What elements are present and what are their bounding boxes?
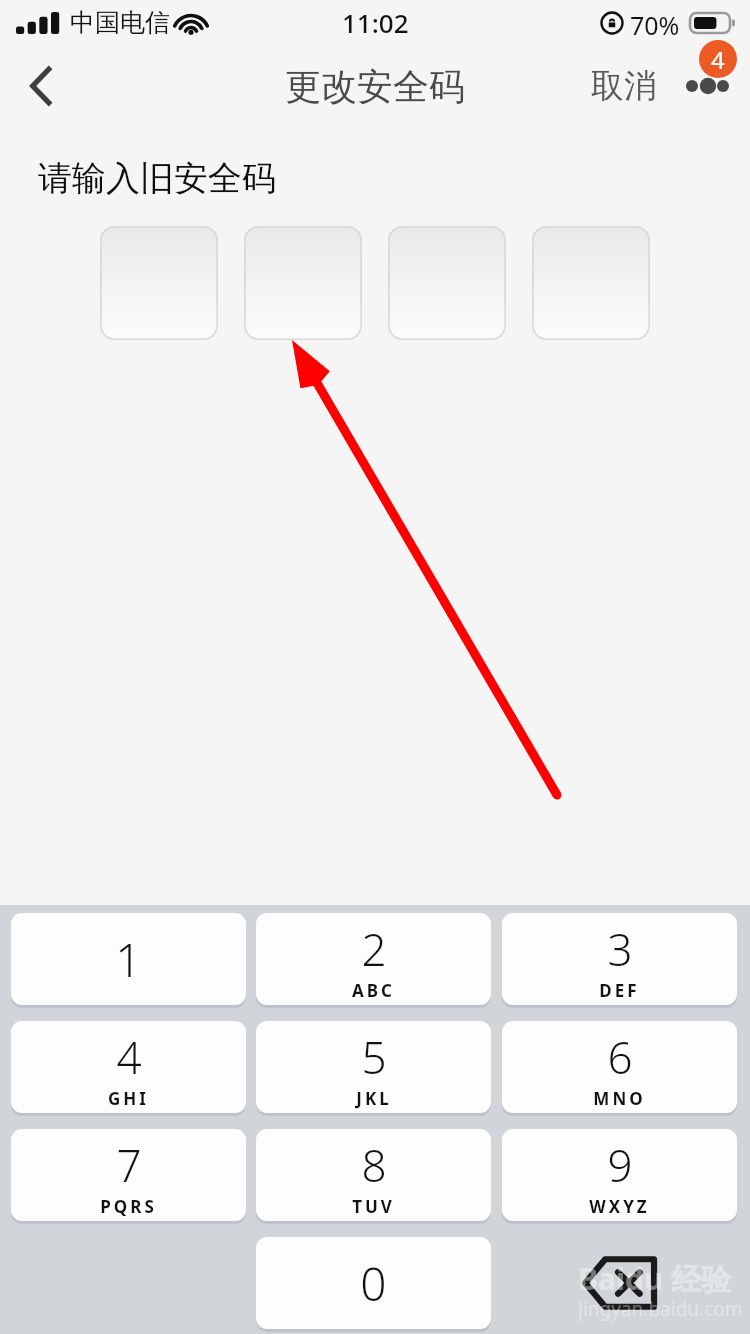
- staticText: 9: [607, 1135, 633, 1195]
- button[interactable]: Back: [8, 44, 74, 128]
- staticText: 2: [361, 919, 387, 979]
- button[interactable]: [532, 226, 650, 340]
- staticText: MNO: [593, 1087, 646, 1110]
- staticText: 4: [116, 1027, 142, 1087]
- staticText: GHI: [108, 1087, 149, 1110]
- staticText: 70%: [630, 8, 680, 42]
- button[interactable]: 4: [11, 1021, 246, 1113]
- button[interactable]: 6: [502, 1021, 737, 1113]
- button[interactable]: More options: [672, 44, 750, 128]
- button[interactable]: [388, 226, 506, 340]
- staticText: 0: [360, 1252, 387, 1315]
- staticText: 取消: [591, 65, 657, 107]
- button[interactable]: 9: [502, 1129, 737, 1221]
- staticText: PQRS: [100, 1195, 157, 1218]
- staticText: 中国电信: [70, 7, 170, 38]
- staticText: 3: [607, 919, 633, 979]
- staticText: WXYZ: [589, 1195, 650, 1218]
- staticText: DEF: [599, 979, 640, 1002]
- staticText: 更改安全码: [285, 64, 465, 109]
- button[interactable]: 7: [11, 1129, 246, 1221]
- button[interactable]: [244, 226, 362, 340]
- staticText: 1: [115, 928, 142, 991]
- staticText: jingyan.baidu.com: [578, 1296, 743, 1322]
- staticText: 4: [711, 43, 725, 76]
- button[interactable]: 5: [256, 1021, 491, 1113]
- staticText: 6: [607, 1027, 633, 1087]
- staticText: 5: [361, 1027, 387, 1087]
- button[interactable]: 2: [256, 913, 491, 1005]
- staticText: ABC: [352, 979, 395, 1002]
- button[interactable]: 8: [256, 1129, 491, 1221]
- staticText: TUV: [352, 1195, 395, 1218]
- staticText: JKL: [356, 1087, 392, 1110]
- staticText: 请输入旧安全码: [38, 157, 276, 200]
- button[interactable]: 3: [502, 913, 737, 1005]
- staticText: 8: [361, 1135, 387, 1195]
- staticText: Baidu 经验: [578, 1258, 732, 1299]
- staticText: 11:02: [342, 5, 409, 40]
- button[interactable]: [100, 226, 218, 340]
- button[interactable]: 取消: [578, 44, 670, 128]
- button[interactable]: 0: [256, 1237, 491, 1329]
- button[interactable]: 1: [11, 913, 246, 1005]
- staticText: 7: [116, 1135, 142, 1195]
- button[interactable]: Delete: [502, 1237, 737, 1329]
